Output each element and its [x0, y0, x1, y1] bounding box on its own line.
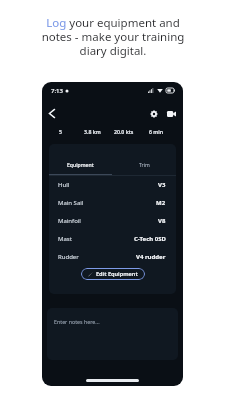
staticText: 7:13: [51, 87, 63, 95]
staticText: C-Tech 0SD: [134, 235, 166, 243]
staticText: M2: [156, 199, 166, 207]
button[interactable]: Rudder: [58, 248, 166, 266]
staticText: Mainfoil: [58, 217, 81, 225]
staticText: V8: [158, 217, 166, 225]
button[interactable]: Enter notes here...: [47, 308, 178, 360]
staticText: 6 min: [149, 128, 164, 135]
staticText: Trim: [139, 162, 150, 169]
button[interactable]: Video: [165, 107, 178, 120]
staticText: Main Sail: [58, 199, 84, 207]
button[interactable]: Hull: [58, 176, 166, 194]
button[interactable]: Mainfoil: [58, 212, 166, 230]
staticText: Edit Equipment: [96, 270, 138, 278]
button[interactable]: Main Sail: [58, 194, 166, 212]
staticText: Mast: [58, 235, 72, 243]
button[interactable]: Edit Equipment: [81, 268, 145, 280]
staticText: Hull: [58, 181, 70, 189]
staticText: 3.8 km: [84, 128, 101, 135]
staticText: Equipment: [67, 162, 94, 169]
staticText: V4 rudder: [136, 253, 166, 261]
staticText: 5: [59, 128, 62, 135]
staticText: V3: [158, 181, 166, 189]
button[interactable]: Back: [45, 106, 59, 120]
staticText: Log your equipment and notes - make your…: [13, 15, 213, 58]
staticText: Rudder: [58, 253, 79, 261]
button[interactable]: Equipment: [49, 144, 112, 175]
staticText: Enter notes here...: [54, 318, 100, 325]
button[interactable]: Mast: [58, 230, 166, 248]
staticText: 20.0 kts: [114, 128, 134, 135]
button[interactable]: Trim: [112, 144, 176, 175]
button[interactable]: Settings: [147, 107, 160, 120]
